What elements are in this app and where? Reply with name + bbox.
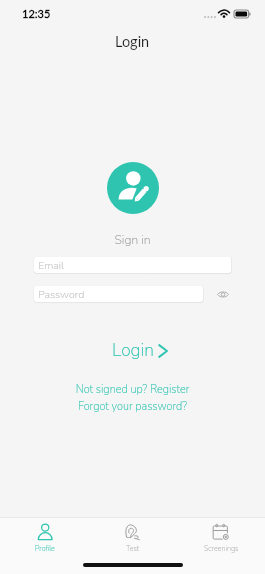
button[interactable]: Email	[34, 257, 231, 273]
staticText: Email	[38, 258, 65, 273]
staticText: Password	[38, 287, 85, 302]
staticText: Screenings	[204, 544, 239, 554]
staticText: Login	[112, 338, 154, 360]
staticText: 12:35	[22, 7, 51, 20]
staticText: Sign in	[0, 232, 265, 249]
button[interactable]: Not signed up? Register	[0, 382, 265, 397]
staticText: Profile	[35, 544, 55, 554]
button[interactable]: Screenings	[177, 517, 265, 555]
staticText: Login	[115, 33, 150, 50]
button[interactable]: Password	[34, 286, 203, 302]
button[interactable]: Edit profile	[107, 162, 159, 214]
button[interactable]: Profile	[0, 517, 89, 555]
button[interactable]: Forgot your password?	[0, 399, 265, 414]
button[interactable]: Show password	[215, 286, 231, 302]
button[interactable]: Test	[89, 517, 177, 555]
staticText: Test	[126, 544, 140, 554]
button[interactable]: Login	[0, 340, 265, 362]
